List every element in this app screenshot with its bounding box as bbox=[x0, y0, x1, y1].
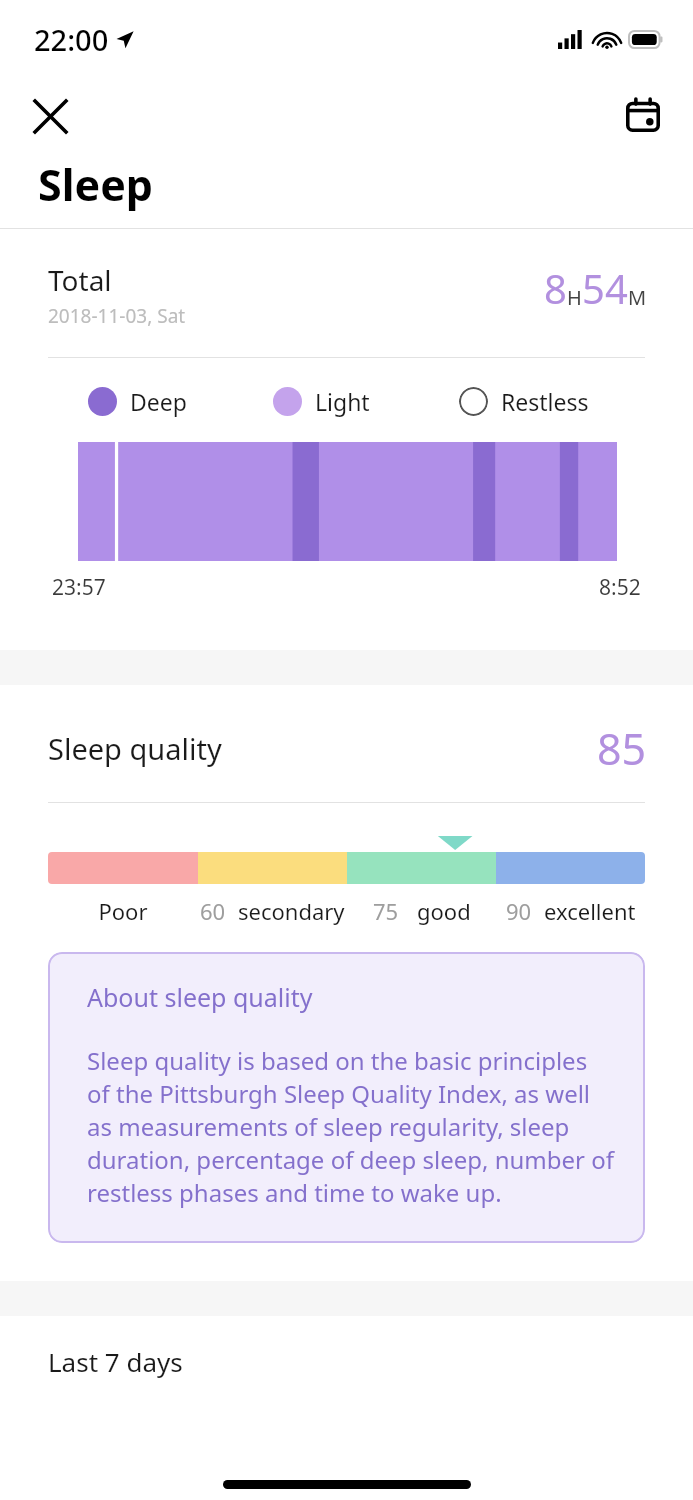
staticText: 8 bbox=[544, 261, 567, 315]
staticText: 23:57 bbox=[52, 573, 106, 602]
staticText: 8:52 bbox=[599, 573, 641, 602]
staticText: excellent bbox=[544, 896, 636, 926]
staticText: Restless bbox=[501, 386, 589, 417]
button[interactable]: Close bbox=[22, 88, 78, 144]
staticText: About sleep quality bbox=[87, 980, 313, 1014]
staticText: 60 bbox=[200, 896, 226, 926]
staticText: M bbox=[628, 284, 647, 311]
staticText: Sleep quality is based on the basic prin… bbox=[87, 1044, 615, 1209]
staticText: 2018-11-03, Sat bbox=[48, 303, 186, 329]
staticText: secondary bbox=[238, 896, 345, 926]
staticText: 22:00 bbox=[34, 20, 109, 59]
staticText: Sleep quality bbox=[48, 729, 222, 768]
staticText: good bbox=[417, 896, 471, 926]
staticText: 90 bbox=[506, 896, 532, 926]
staticText: 85 bbox=[597, 719, 647, 778]
staticText: H bbox=[567, 284, 582, 311]
staticText: 54 bbox=[582, 261, 628, 315]
staticText: Poor bbox=[98, 896, 148, 926]
button[interactable]: Calendar bbox=[615, 88, 671, 144]
staticText: Total bbox=[48, 261, 112, 299]
staticText: 75 bbox=[373, 896, 399, 926]
staticText: Light bbox=[315, 386, 370, 417]
staticText: Deep bbox=[130, 386, 187, 417]
staticText: Last 7 days bbox=[48, 1344, 183, 1379]
button[interactable]: About sleep quality bbox=[48, 952, 645, 1243]
staticText: Sleep bbox=[38, 155, 154, 211]
